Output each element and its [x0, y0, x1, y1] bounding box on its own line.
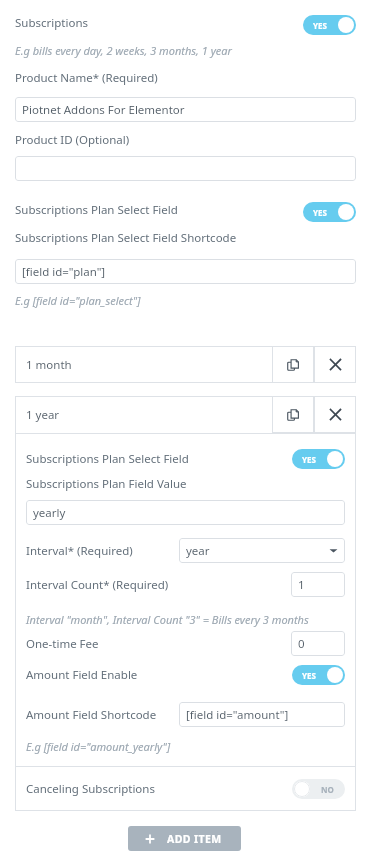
button[interactable]: Enabled toggle — [303, 15, 356, 35]
staticText: YES — [313, 207, 327, 218]
button[interactable]: 1 — [291, 572, 345, 597]
staticText: Subscriptions Plan Select Field Shortcod… — [15, 230, 237, 246]
staticText: Interval Count* (Required) — [26, 577, 291, 593]
button[interactable]: 1 year — [26, 396, 272, 433]
staticText: YES — [302, 454, 316, 465]
staticText: Product ID (Optional) — [15, 132, 130, 148]
staticText: YES — [313, 20, 327, 31]
button[interactable]: Duplicate — [272, 346, 314, 383]
staticText: Canceling Subscriptions — [26, 781, 292, 797]
staticText: yearly — [33, 505, 66, 521]
button[interactable]: year — [179, 538, 345, 563]
button[interactable]: Piotnet Addons For Elementor — [15, 97, 356, 122]
staticText: One-time Fee — [26, 636, 291, 652]
staticText: Amount Field Enable — [26, 667, 292, 683]
button[interactable]: Remove — [314, 396, 356, 433]
staticText: Subscriptions Plan Select Field — [15, 202, 303, 218]
button[interactable]: [field id="amount"] — [179, 702, 345, 727]
staticText: 1 month — [26, 357, 72, 373]
button[interactable]: 1 month — [26, 346, 272, 383]
staticText: 1 — [298, 577, 305, 593]
staticText: Product Name* (Required) — [15, 70, 158, 86]
staticText: E.g [field id="amount_yearly"] — [26, 739, 171, 754]
staticText: Amount Field Shortcode — [26, 707, 179, 723]
staticText: [field id="plan"] — [22, 264, 106, 280]
staticText: ADD ITEM — [167, 832, 222, 846]
button[interactable]: Remove — [314, 346, 356, 383]
staticText: E.g [field id="plan_select"] — [15, 293, 141, 308]
button[interactable]: Enabled toggle — [303, 202, 356, 222]
staticText: year — [186, 543, 210, 559]
button[interactable] — [15, 156, 356, 181]
staticText: Subscriptions Plan Select Field — [26, 451, 292, 467]
button[interactable]: Duplicate — [272, 396, 314, 433]
staticText: Subscriptions — [15, 15, 303, 31]
button[interactable]: Disabled toggle — [292, 779, 345, 799]
staticText: YES — [302, 670, 316, 681]
staticText: 1 year — [26, 407, 60, 423]
staticText: [field id="amount"] — [186, 707, 289, 723]
button[interactable]: ADD ITEM — [128, 826, 241, 851]
staticText: E.g bills every day, 2 weeks, 3 months, … — [15, 43, 232, 58]
button[interactable]: [field id="plan"] — [15, 259, 356, 284]
staticText: Interval* (Required) — [26, 543, 179, 559]
button[interactable]: yearly — [26, 500, 345, 525]
button[interactable]: Enabled toggle — [292, 665, 345, 685]
button[interactable]: Enabled toggle — [292, 449, 345, 469]
staticText: Interval "month", Interval Count "3" = B… — [26, 612, 309, 627]
staticText: 0 — [298, 636, 305, 652]
staticText: NO — [321, 784, 334, 795]
staticText: Subscriptions Plan Field Value — [26, 476, 187, 492]
staticText: Piotnet Addons For Elementor — [22, 102, 185, 118]
button[interactable]: 0 — [291, 631, 345, 656]
